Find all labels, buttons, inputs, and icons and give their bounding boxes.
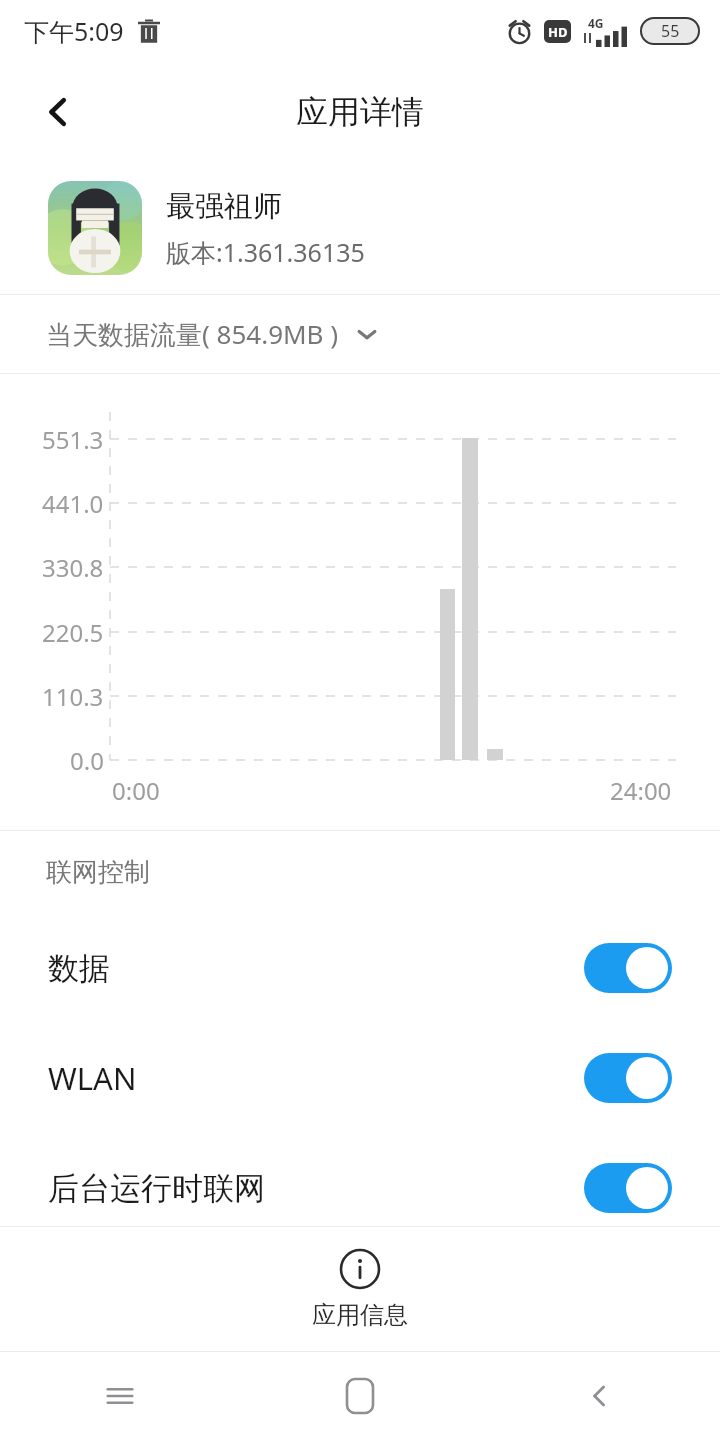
staticText: 联网控制 [46,856,150,889]
button[interactable]: 最强祖师 [0,162,720,294]
staticText: 数据 [48,949,110,988]
staticText: 110.3 [42,680,104,713]
staticText: 当天数据流量( 854.9MB ) [46,316,339,352]
button[interactable]: WLAN toggle [584,1053,672,1103]
button[interactable]: Recent apps [0,1352,240,1440]
staticText: 后台运行时联网 [48,1169,265,1208]
button[interactable]: 数据 [0,913,720,1023]
staticText: 4G [588,15,604,31]
staticText: 55 [661,20,680,42]
button[interactable]: 后台运行时联网 [0,1133,720,1243]
button[interactable]: Back [18,72,98,152]
staticText: 441.0 [42,487,104,520]
staticText: 24:00 [610,774,672,807]
staticText: 330.8 [42,551,104,584]
button[interactable]: 应用信息 [0,1227,720,1351]
button[interactable]: Back [480,1352,720,1440]
staticText: WLAN [48,1057,137,1099]
staticText: 220.5 [42,616,104,649]
button[interactable]: 当天数据流量( 854.9MB ) [0,295,720,373]
staticText: 0:00 [112,774,160,807]
staticText: 应用详情 [296,92,424,132]
staticText: 551.3 [42,423,104,456]
staticText: 版本:1.361.36135 [166,235,365,269]
staticText: 应用信息 [312,1300,408,1330]
staticText: HD [548,23,568,41]
button[interactable]: 后台运行时联网 toggle [584,1163,672,1213]
button[interactable]: Home [240,1352,480,1440]
staticText: 最强祖师 [166,188,282,225]
button[interactable]: WLAN [0,1023,720,1133]
button[interactable]: 数据 toggle [584,943,672,993]
staticText: 0.0 [70,744,104,777]
staticText: 下午5:09 [24,14,124,48]
